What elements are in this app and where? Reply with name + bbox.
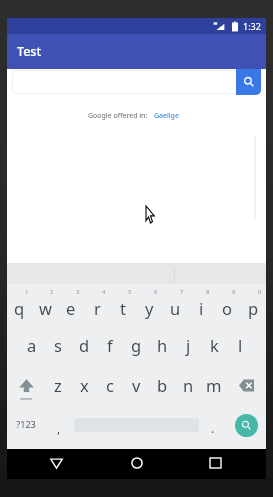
button[interactable]: 5 [110, 284, 136, 325]
staticText: 5 [128, 288, 132, 296]
button[interactable]: l [227, 325, 253, 365]
button[interactable]: ?123 [15, 418, 37, 430]
button[interactable]: 1 [7, 284, 32, 325]
staticText: 6 [154, 288, 158, 296]
staticText: a [27, 334, 37, 356]
button[interactable]: f [97, 325, 123, 365]
staticText: z [54, 374, 62, 396]
button[interactable]: Shift [7, 365, 45, 405]
button[interactable]: n [175, 365, 201, 405]
button[interactable]: 6 [136, 284, 162, 325]
button[interactable]: d [71, 325, 97, 365]
staticText: r [94, 297, 101, 319]
button[interactable]: Back [38, 449, 75, 479]
staticText: c [106, 374, 114, 396]
staticText: e [66, 297, 76, 319]
button[interactable]: 8 [188, 284, 214, 325]
button[interactable]: Search [235, 414, 258, 437]
staticText: j [186, 334, 191, 356]
button[interactable]: 2 [32, 284, 58, 325]
button[interactable]: k [201, 325, 227, 365]
staticText: x [80, 374, 89, 396]
staticText: m [206, 374, 222, 396]
button[interactable]: x [71, 365, 97, 405]
button[interactable]: a [19, 325, 45, 365]
button[interactable]: 3 [58, 284, 84, 325]
button[interactable]: h [149, 325, 175, 365]
button[interactable]: . [205, 409, 221, 439]
staticText: y [145, 297, 154, 319]
staticText: 2 [50, 288, 54, 296]
staticText: , [57, 420, 61, 436]
button[interactable]: 9 [214, 284, 240, 325]
button[interactable]: g [123, 325, 149, 365]
button[interactable]: 7 [162, 284, 188, 325]
staticText: u [170, 297, 181, 319]
staticText: p [248, 297, 259, 319]
staticText: Google offered in: [88, 111, 148, 121]
staticText: w [39, 297, 52, 319]
staticText: 8 [206, 288, 210, 296]
staticText: o [222, 297, 232, 319]
button[interactable]: m [201, 365, 227, 405]
staticText: g [131, 334, 142, 356]
button[interactable]: v [123, 365, 149, 405]
staticText: . [211, 420, 215, 436]
button[interactable]: Recents [197, 449, 234, 479]
button[interactable]: , [51, 409, 67, 439]
staticText: 4 [102, 288, 106, 296]
staticText: t [120, 297, 126, 319]
staticText: k [210, 334, 219, 356]
button[interactable]: Search [236, 69, 261, 95]
staticText: l [238, 334, 243, 356]
button[interactable] [12, 70, 238, 94]
staticText: n [183, 374, 194, 396]
button[interactable]: b [149, 365, 175, 405]
staticText: b [157, 374, 168, 396]
staticText: 1 [25, 288, 29, 296]
staticText: v [132, 374, 141, 396]
button[interactable]: z [45, 365, 71, 405]
staticText: q [14, 297, 25, 319]
button[interactable]: Gaeilge [154, 111, 179, 121]
button[interactable]: Home [118, 449, 155, 479]
staticText: 7 [180, 288, 184, 296]
button[interactable]: 0 [240, 284, 266, 325]
staticText: i [199, 297, 204, 319]
staticText: d [79, 334, 90, 356]
staticText: h [157, 334, 168, 356]
staticText: 9 [232, 288, 236, 296]
button[interactable]: j [175, 325, 201, 365]
staticText: 0 [258, 288, 262, 296]
staticText: 1:32 [243, 20, 261, 32]
staticText: f [107, 334, 113, 356]
button[interactable]: c [97, 365, 123, 405]
staticText: 3 [76, 288, 80, 296]
staticText: s [54, 334, 62, 356]
button[interactable]: 4 [84, 284, 110, 325]
staticText: Test [17, 43, 42, 60]
button[interactable]: s [45, 325, 71, 365]
button[interactable]: Backspace [227, 365, 266, 405]
